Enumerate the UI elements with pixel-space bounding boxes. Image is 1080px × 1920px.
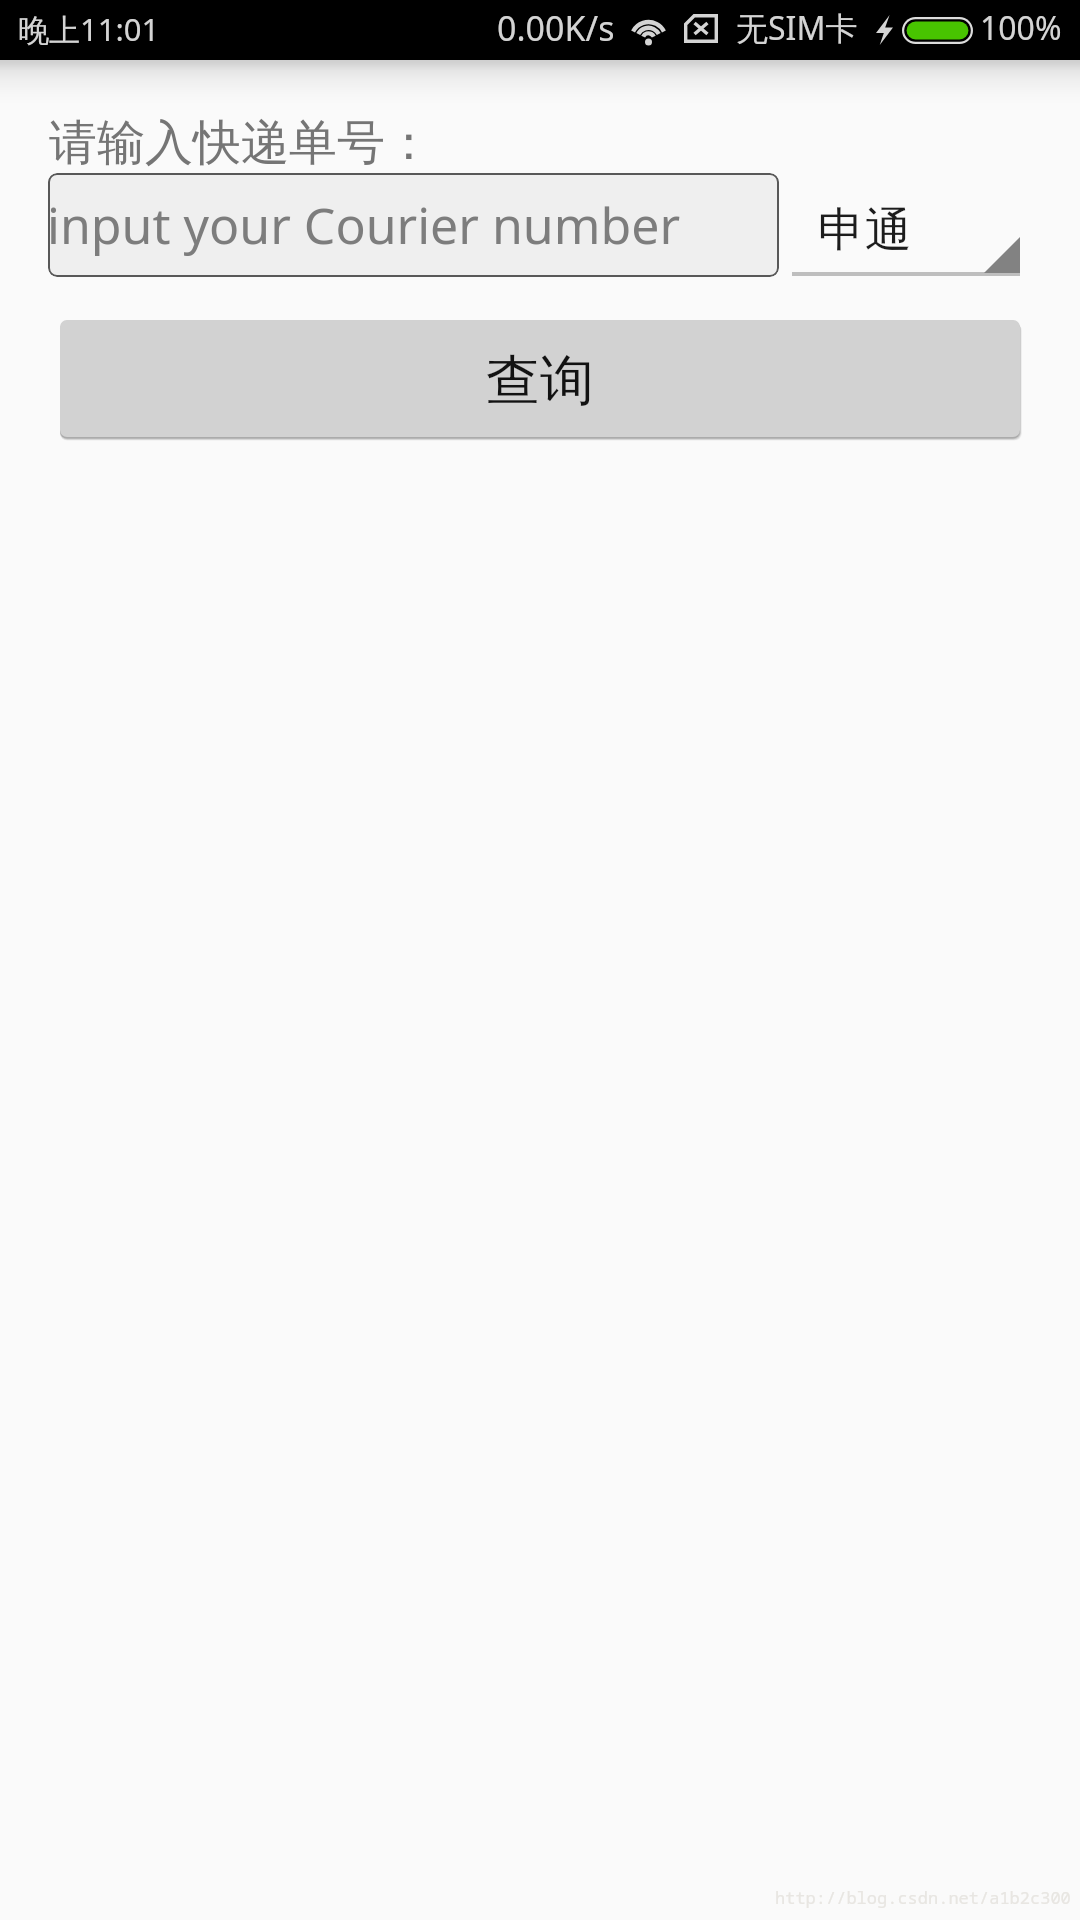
staticText: 申通 [818, 201, 912, 260]
staticText: 请输入快递单号： [49, 113, 433, 173]
staticText: 100% [980, 6, 1062, 50]
staticText: 晚上11:01 [18, 8, 160, 50]
button[interactable]: 选择快递公司 [792, 173, 1020, 277]
staticText: input your Courier number [48, 191, 681, 259]
button[interactable]: input your Courier number [48, 173, 779, 277]
staticText: 无SIM卡 [736, 6, 858, 50]
staticText: http://blog.csdn.net/a1b2c300 [775, 1886, 1071, 1909]
staticText: 查询 [486, 347, 594, 415]
staticText: 0.00K/s [497, 5, 615, 51]
button[interactable]: 查询 [60, 320, 1020, 437]
